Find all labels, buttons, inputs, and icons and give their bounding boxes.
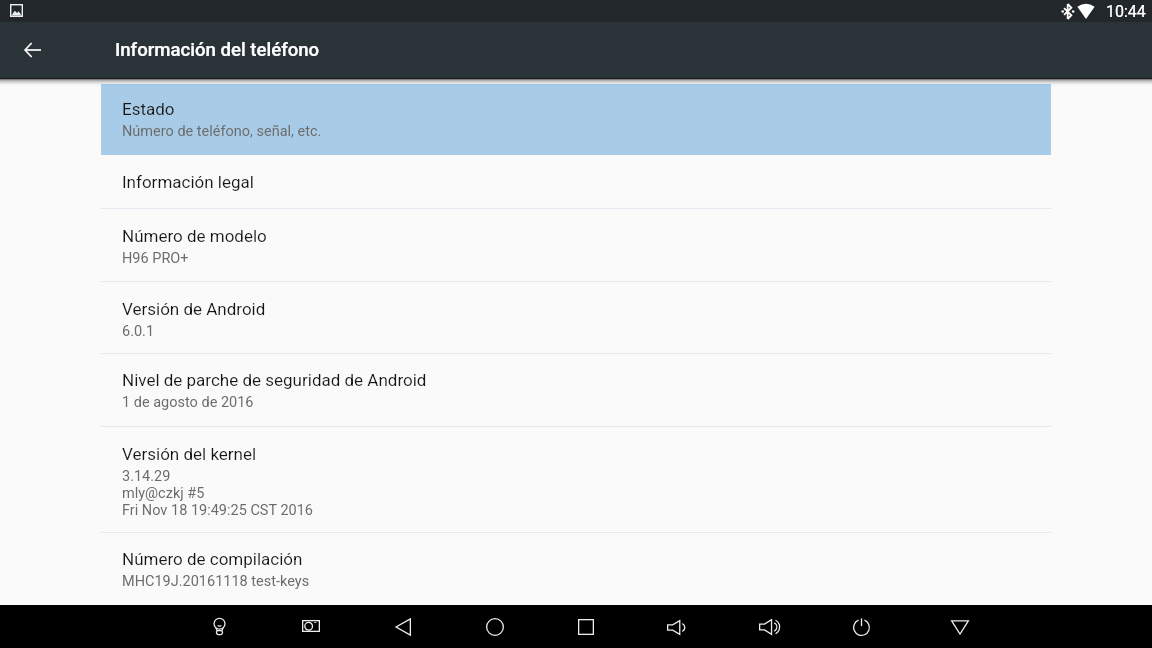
button[interactable]: Estado bbox=[101, 84, 1051, 155]
staticText: Estado bbox=[122, 99, 175, 119]
staticText: Versión del kernel bbox=[122, 444, 257, 464]
button[interactable]: Versión del kernel bbox=[101, 427, 1051, 532]
staticText: 3.14.29 bbox=[122, 468, 171, 485]
button[interactable]: Volume up bbox=[747, 605, 793, 648]
staticText: 10:44 bbox=[1106, 2, 1146, 21]
button[interactable]: Nivel de parche de seguridad de Android bbox=[101, 354, 1051, 426]
button[interactable]: Screenshot bbox=[288, 605, 334, 648]
staticText: Versión de Android bbox=[122, 299, 266, 319]
staticText: 6.0.1 bbox=[122, 323, 155, 340]
staticText: Fri Nov 18 19:49:25 CST 2016 bbox=[122, 502, 314, 519]
button[interactable]: Volume down bbox=[654, 605, 700, 648]
button[interactable]: Home bbox=[472, 605, 518, 648]
staticText: Información del teléfono bbox=[115, 39, 320, 61]
button[interactable]: Hide navigation bar bbox=[937, 605, 983, 648]
button[interactable]: Flashlight bbox=[196, 605, 242, 648]
button[interactable]: Back bbox=[380, 605, 426, 648]
button[interactable]: Recents bbox=[563, 605, 609, 648]
staticText: Número de teléfono, señal, etc. bbox=[122, 123, 322, 140]
staticText: Número de compilación bbox=[122, 549, 303, 569]
staticText: Nivel de parche de seguridad de Android bbox=[122, 370, 427, 390]
staticText: mly@czkj #5 bbox=[122, 485, 205, 502]
button[interactable]: Back bbox=[8, 26, 56, 74]
button[interactable]: Versión de Android bbox=[101, 282, 1051, 353]
button[interactable]: Número de compilación bbox=[101, 533, 1051, 605]
staticText: Número de modelo bbox=[122, 226, 267, 246]
staticText: 1 de agosto de 2016 bbox=[122, 394, 254, 411]
button[interactable]: Power bbox=[839, 605, 885, 648]
button[interactable]: Información legal bbox=[101, 155, 1051, 208]
staticText: H96 PRO+ bbox=[122, 250, 189, 267]
button[interactable]: Número de modelo bbox=[101, 209, 1051, 281]
staticText: MHC19J.20161118 test-keys bbox=[122, 573, 310, 590]
staticText: Información legal bbox=[122, 172, 254, 192]
